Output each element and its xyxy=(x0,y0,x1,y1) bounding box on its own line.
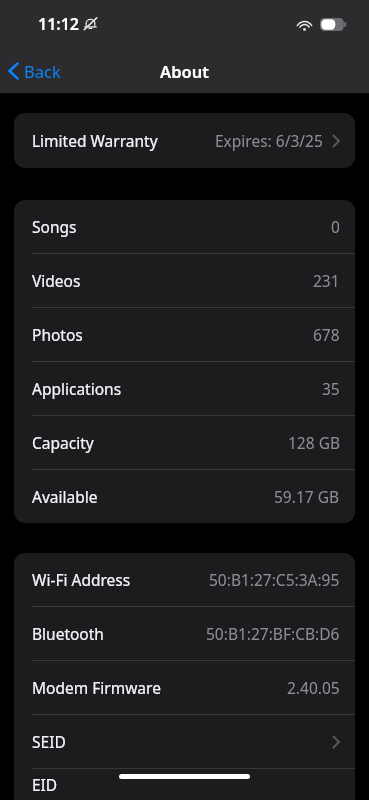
other: Open Limited Warranty xyxy=(332,134,340,148)
button[interactable]: Modem Firmware xyxy=(14,661,355,714)
staticText: Videos xyxy=(32,270,81,291)
staticText: 50:B1:27:BF:CB:D6 xyxy=(206,623,340,644)
staticText: 128 GB xyxy=(288,432,340,453)
button[interactable]: Bluetooth xyxy=(14,607,355,660)
staticText: 11:12 xyxy=(38,13,80,35)
button[interactable]: Back xyxy=(0,56,69,86)
staticText: Applications xyxy=(32,378,122,399)
button[interactable]: Capacity xyxy=(14,416,355,469)
staticText: Wi-Fi Address xyxy=(32,569,131,590)
staticText: Limited Warranty xyxy=(32,130,158,151)
staticText: EID xyxy=(32,774,58,795)
staticText: About xyxy=(160,60,209,82)
staticText: 678 xyxy=(313,324,340,345)
staticText: 35 xyxy=(322,378,340,399)
staticText: 50:B1:27:C5:3A:95 xyxy=(209,569,340,590)
button[interactable]: Videos xyxy=(14,254,355,307)
staticText: 59.17 GB xyxy=(274,486,340,507)
button[interactable]: Available xyxy=(14,470,355,523)
staticText: 231 xyxy=(313,270,340,291)
staticText: 2.40.05 xyxy=(287,677,340,698)
other: Open SEID xyxy=(332,735,340,749)
staticText: Songs xyxy=(32,216,77,237)
staticText: Back xyxy=(24,60,61,82)
staticText: SEID xyxy=(32,731,66,752)
staticText: 0 xyxy=(331,216,340,237)
button[interactable]: SEID xyxy=(14,715,355,768)
button[interactable]: EID xyxy=(14,769,355,800)
button[interactable]: Limited Warranty xyxy=(14,113,355,168)
staticText: Modem Firmware xyxy=(32,677,161,698)
button[interactable]: Songs xyxy=(14,200,355,253)
staticText: Photos xyxy=(32,324,83,345)
button[interactable]: Applications xyxy=(14,362,355,415)
staticText: Available xyxy=(32,486,98,507)
staticText: Expires: 6/3/25 xyxy=(215,130,323,151)
staticText: Bluetooth xyxy=(32,623,104,644)
staticText: Capacity xyxy=(32,432,94,453)
button[interactable]: Wi-Fi Address xyxy=(14,553,355,606)
button[interactable]: Photos xyxy=(14,308,355,361)
